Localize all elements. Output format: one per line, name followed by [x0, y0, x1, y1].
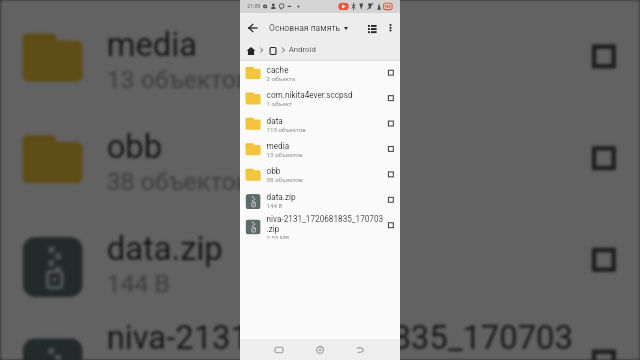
button[interactable]: obb [0, 110, 640, 210]
staticText: obb [107, 126, 163, 166]
button[interactable]: Ещё [381, 13, 400, 43]
staticText: 1 объект [267, 100, 293, 107]
staticText: data.zip [267, 192, 297, 202]
button[interactable]: Выбрать [383, 65, 399, 81]
staticText: cache [267, 65, 289, 75]
staticText: 38 объектов [267, 176, 303, 183]
staticText: 144 B [107, 268, 171, 296]
button[interactable]: data [0, 0, 640, 6]
button[interactable]: Выбрать [383, 141, 399, 157]
button[interactable]: Выбрать [383, 90, 399, 106]
button[interactable]: Выбрать [383, 217, 399, 233]
button[interactable]: Вид списка [362, 13, 382, 43]
staticText: media [267, 141, 290, 151]
button[interactable]: media [0, 8, 640, 108]
button[interactable]: media [240, 137, 400, 162]
button[interactable]: data.zip [0, 211, 640, 311]
staticText: 115 объектов [267, 125, 307, 132]
staticText: 21:09 [247, 3, 260, 9]
button[interactable]: Выбрать [572, 126, 636, 190]
button[interactable]: Выбрать [572, 329, 636, 360]
button[interactable]: Выбрать [572, 24, 636, 88]
staticText: Основная память [269, 23, 341, 33]
staticText: media [107, 24, 199, 64]
button[interactable]: data [240, 111, 400, 136]
staticText: com.nikita4ever.sccpsd [267, 90, 353, 100]
button[interactable]: obb [240, 162, 400, 187]
staticText: 144 B [267, 202, 283, 209]
staticText: obb [267, 166, 281, 176]
staticText: data [267, 115, 284, 125]
button[interactable]: Устройство [263, 42, 281, 59]
staticText: .zip [107, 357, 159, 360]
button[interactable]: Основная память [269, 13, 348, 43]
staticText: data.zip [107, 228, 227, 268]
button[interactable]: com.nikita4ever.sccpsd [240, 86, 400, 111]
button[interactable]: data.zip [240, 188, 400, 213]
button[interactable]: niva-2131_1720681835_170703 [0, 313, 640, 360]
button[interactable]: Назад [242, 13, 263, 43]
staticText: .zip [267, 224, 280, 234]
button[interactable]: Назад [350, 339, 370, 360]
button[interactable]: Выбрать [383, 115, 399, 131]
button[interactable]: Недавние приложения [269, 339, 289, 360]
button[interactable]: cache [240, 61, 400, 86]
button[interactable]: Выбрать [383, 192, 399, 208]
button[interactable]: Выбрать [383, 166, 399, 182]
button[interactable]: Выбрать [572, 228, 636, 292]
staticText: niva-2131_1720681835_170703 [267, 214, 384, 224]
staticText: 38 объектов [107, 166, 251, 194]
staticText: 13 объектов [267, 151, 303, 158]
staticText: niva-2131_1720681835_170703 [107, 317, 575, 357]
staticText: 13 объектов [107, 64, 251, 92]
button[interactable]: Главный экран [310, 339, 330, 360]
staticText: Android [289, 45, 317, 54]
button[interactable]: Домой [241, 42, 259, 59]
staticText: 2,53 MB [267, 234, 290, 239]
staticText: 2 объекта [267, 75, 296, 82]
button[interactable]: niva-2131_1720681835_170703 [240, 213, 400, 238]
